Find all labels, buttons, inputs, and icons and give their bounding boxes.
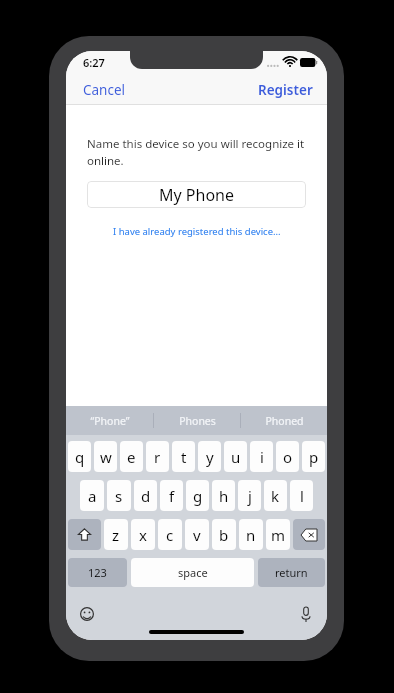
button[interactable]: q xyxy=(68,441,91,472)
button[interactable]: Register xyxy=(244,76,327,104)
staticText: 123 xyxy=(88,565,107,580)
button[interactable]: space xyxy=(131,558,254,587)
button[interactable]: d xyxy=(134,480,157,511)
staticText: p xyxy=(309,447,319,467)
button[interactable]: return xyxy=(258,558,325,587)
button[interactable]: “Phone” xyxy=(66,406,153,435)
staticText: s xyxy=(115,486,123,506)
staticText: z xyxy=(112,525,120,545)
button[interactable]: h xyxy=(212,480,235,511)
staticText: l xyxy=(300,486,304,506)
staticText: “Phone” xyxy=(90,414,130,428)
button[interactable]: Emoji xyxy=(77,604,97,624)
staticText: Phones xyxy=(179,414,216,428)
staticText: return xyxy=(275,565,308,580)
staticText: I have already registered this device... xyxy=(113,225,281,238)
button[interactable]: n xyxy=(239,519,263,550)
staticText: w xyxy=(100,447,112,467)
button[interactable]: b xyxy=(212,519,236,550)
button[interactable]: v xyxy=(185,519,209,550)
button[interactable]: Phones xyxy=(154,406,240,435)
button[interactable]: k xyxy=(264,480,287,511)
staticText: y xyxy=(206,447,214,467)
staticText: v xyxy=(193,525,201,545)
button[interactable]: s xyxy=(107,480,131,511)
staticText: b xyxy=(219,525,229,545)
button[interactable]: p xyxy=(302,441,325,472)
button[interactable]: g xyxy=(186,480,209,511)
staticText: i xyxy=(260,447,264,467)
staticText: e xyxy=(127,447,136,467)
button[interactable]: i xyxy=(250,441,273,472)
staticText: u xyxy=(231,447,241,467)
button[interactable]: z xyxy=(104,519,128,550)
staticText: a xyxy=(88,486,97,506)
button[interactable]: e xyxy=(120,441,143,472)
button[interactable]: Dictate xyxy=(296,604,316,624)
staticText: space xyxy=(178,565,208,580)
staticText: g xyxy=(193,486,203,506)
staticText: t xyxy=(181,447,187,467)
staticText: n xyxy=(246,525,256,545)
staticText: Name this device so you will recognize i… xyxy=(87,136,306,168)
button[interactable]: l xyxy=(290,480,313,511)
button[interactable]: a xyxy=(80,480,104,511)
staticText: Phoned xyxy=(265,414,304,428)
button[interactable]: I have already registered this device... xyxy=(105,222,289,241)
button[interactable]: r xyxy=(146,441,169,472)
button[interactable]: 123 xyxy=(68,558,127,587)
staticText: q xyxy=(75,447,85,467)
button[interactable]: Backspace xyxy=(293,519,325,550)
staticText: 6:27 xyxy=(83,55,105,70)
button[interactable]: Shift xyxy=(68,519,101,550)
staticText: Cancel xyxy=(83,81,126,99)
button[interactable]: w xyxy=(94,441,117,472)
staticText: Register xyxy=(258,81,313,99)
button[interactable]: My Phone xyxy=(87,181,306,208)
button[interactable]: o xyxy=(276,441,299,472)
button[interactable]: x xyxy=(131,519,155,550)
button[interactable]: j xyxy=(238,480,261,511)
button[interactable]: u xyxy=(224,441,247,472)
button[interactable]: f xyxy=(160,480,183,511)
button[interactable]: t xyxy=(172,441,195,472)
staticText: h xyxy=(219,486,229,506)
staticText: r xyxy=(154,447,161,467)
button[interactable]: c xyxy=(158,519,182,550)
button[interactable]: Phoned xyxy=(241,406,327,435)
staticText: c xyxy=(166,525,174,545)
staticText: j xyxy=(248,486,252,506)
staticText: x xyxy=(139,525,147,545)
staticText: f xyxy=(169,486,175,506)
button[interactable]: Cancel xyxy=(66,76,143,104)
staticText: m xyxy=(271,525,286,545)
staticText: k xyxy=(271,486,280,506)
staticText: o xyxy=(283,447,293,467)
button[interactable]: y xyxy=(198,441,221,472)
button[interactable]: m xyxy=(266,519,290,550)
staticText: d xyxy=(141,486,151,506)
staticText: My Phone xyxy=(159,184,234,206)
